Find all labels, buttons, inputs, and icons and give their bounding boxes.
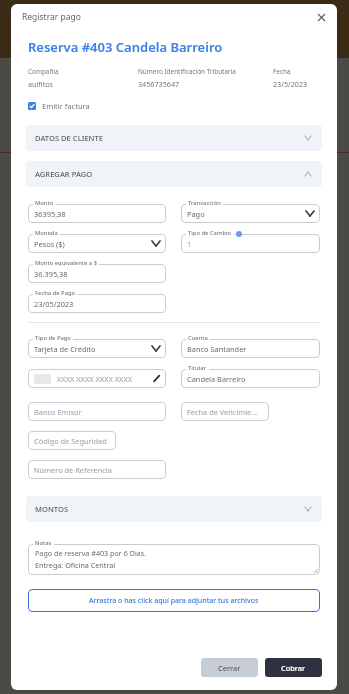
button[interactable]: XXXX XXXX XXXX XXXX: [28, 369, 166, 388]
staticText: Pago de reserva #403 por 6 Dias.: [35, 548, 147, 558]
staticText: Número Identificación Tributaria: [138, 67, 236, 76]
staticText: Tipo de Pago: [35, 334, 71, 342]
button[interactable]: 23/05/2023: [28, 294, 166, 313]
staticText: 23/05/2023: [34, 299, 160, 309]
staticText: Tipo de Cambio: [188, 229, 232, 237]
staticText: Candela Barreiro: [187, 374, 314, 384]
staticText: DATOS DE CLIENTE: [35, 133, 104, 143]
button[interactable]: 1: [181, 234, 320, 253]
button[interactable]: DATOS DE CLIENTE: [26, 125, 322, 151]
staticText: 3456735647: [138, 79, 180, 89]
staticText: Transacción: [188, 199, 221, 207]
button[interactable]: Pago de reserva #403 por 6 Dias.: [28, 544, 320, 575]
button[interactable]: 36.395,38: [28, 264, 166, 283]
staticText: Fecha de Vencimie…: [187, 407, 263, 417]
staticText: Cerrar: [218, 663, 241, 673]
button[interactable]: Cobrar: [265, 658, 322, 677]
staticText: aulfitos: [28, 79, 54, 89]
button[interactable]: Cerrar: [313, 9, 329, 25]
staticText: 23/5/2023: [273, 79, 308, 89]
staticText: Fecha: [273, 67, 291, 76]
staticText: MONTOS: [35, 504, 69, 514]
staticText: Cobrar: [281, 663, 306, 673]
button[interactable]: 36395,38: [28, 204, 166, 223]
staticText: Banco Emisor: [34, 407, 160, 417]
staticText: Registrar pago: [22, 11, 81, 23]
staticText: Monto: [35, 199, 54, 207]
button[interactable]: MONTOS: [26, 496, 322, 522]
button[interactable]: Banco Emisor: [28, 402, 166, 421]
button[interactable]: Pesos ($): [28, 234, 166, 253]
staticText: Pesos ($): [34, 239, 152, 249]
staticText: XXXX XXXX XXXX XXXX: [57, 374, 153, 384]
staticText: Emitir factura: [42, 101, 90, 111]
staticText: 36.395,38: [34, 269, 160, 279]
button[interactable]: Fecha de Vencimie…: [181, 402, 269, 421]
staticText: Arrastra o has click aquí para adjuntar …: [89, 596, 259, 606]
button[interactable]: Número de Referencia: [28, 460, 166, 479]
staticText: Compañía: [28, 67, 59, 76]
button[interactable]: Tarjeta de Crédito: [28, 339, 166, 358]
staticText: 1: [187, 239, 314, 249]
staticText: Número de Referencia: [34, 465, 160, 475]
staticText: Moneda: [35, 229, 58, 237]
staticText: AGREGAR PAGO: [35, 169, 93, 179]
button[interactable]: Emitir factura: [28, 101, 90, 111]
staticText: Reserva #403 Candela Barreiro: [28, 38, 223, 56]
staticText: Entrega: Oficina Central: [35, 560, 116, 570]
button[interactable]: Banco Santander: [181, 339, 320, 358]
staticText: Banco Santander: [187, 344, 314, 354]
button[interactable]: AGREGAR PAGO: [26, 161, 322, 187]
staticText: Código de Seguridad: [34, 436, 110, 446]
staticText: Titular: [188, 364, 207, 372]
button[interactable]: Código de Seguridad: [28, 431, 116, 450]
button[interactable]: Candela Barreiro: [181, 369, 320, 388]
staticText: 36395,38: [34, 209, 160, 219]
staticText: Notas: [35, 539, 52, 547]
staticText: Tarjeta de Crédito: [34, 344, 152, 354]
button[interactable]: Pago: [181, 204, 320, 223]
button[interactable]: Arrastra o has click aquí para adjuntar …: [28, 589, 320, 612]
staticText: Pago: [187, 209, 306, 219]
staticText: Monto equivalente a $: [35, 259, 97, 267]
staticText: Cuenta: [188, 334, 208, 342]
button[interactable]: Cerrar: [201, 658, 258, 677]
staticText: Fecha de Pago: [35, 289, 76, 297]
